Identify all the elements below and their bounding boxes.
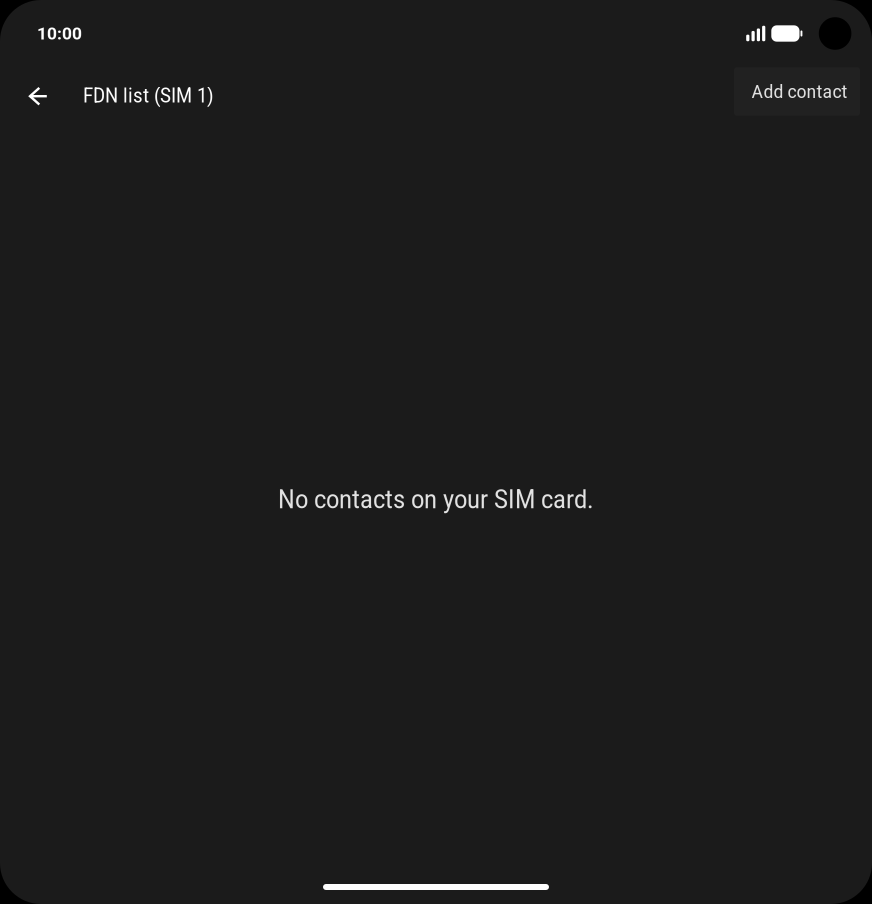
staticText: 10:00: [37, 23, 82, 44]
button[interactable]: Add contact: [734, 67, 860, 116]
staticText: FDN list (SIM 1): [83, 84, 214, 107]
staticText: No contacts on your SIM card.: [278, 485, 594, 514]
staticText: Add contact: [752, 81, 848, 102]
button[interactable]: Navigate up: [14, 72, 62, 120]
